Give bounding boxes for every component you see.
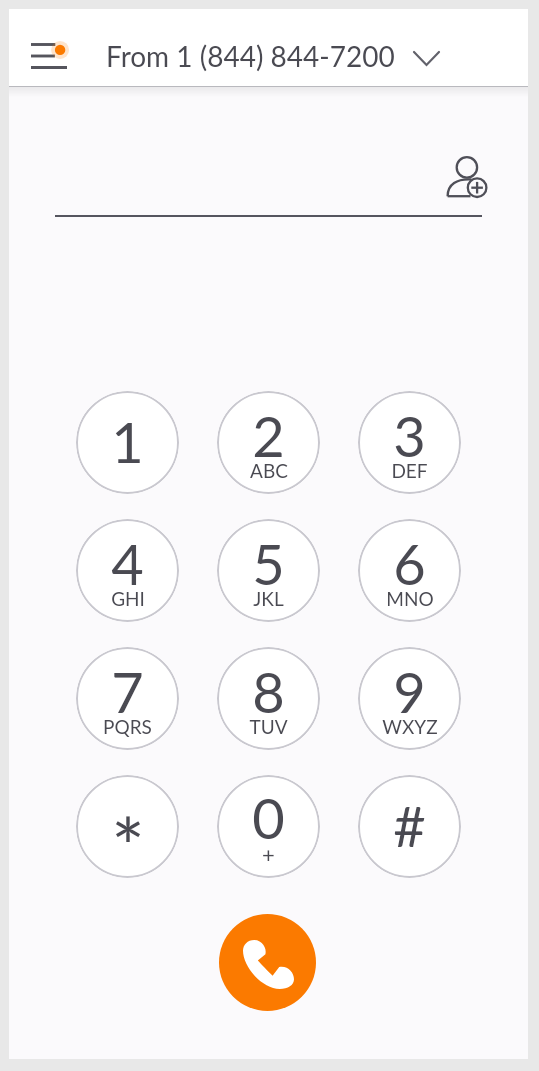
staticText: GHI (111, 587, 145, 610)
button[interactable]: Change outgoing number (404, 38, 449, 78)
staticText: TUV (249, 715, 288, 738)
staticText: 6 (393, 530, 426, 597)
staticText: From 1 (844) 844-7200 (106, 39, 395, 73)
staticText: DEF (391, 459, 428, 482)
staticText: 0 (252, 784, 285, 851)
staticText: 2 (252, 402, 285, 469)
staticText: 5 (252, 530, 285, 597)
button[interactable]: Menu (13, 9, 93, 86)
staticText: # (393, 792, 426, 859)
staticText: 9 (393, 658, 426, 725)
button[interactable]: 6 (358, 519, 461, 622)
staticText: + (262, 841, 275, 867)
staticText: ABC (250, 459, 288, 482)
staticText: * (111, 797, 145, 878)
button[interactable]: 2 (217, 391, 320, 494)
button[interactable]: # (358, 775, 461, 878)
button[interactable]: * (76, 775, 179, 878)
button[interactable]: 7 (76, 647, 179, 750)
staticText: PQRS (103, 715, 152, 738)
staticText: 8 (252, 658, 285, 725)
button[interactable]: 8 (217, 647, 320, 750)
button[interactable]: 0 (217, 775, 320, 878)
staticText: MNO (386, 587, 434, 610)
button[interactable]: 9 (358, 647, 461, 750)
staticText: 7 (111, 658, 144, 725)
staticText: 4 (111, 530, 144, 597)
button[interactable]: 4 (76, 519, 179, 622)
staticText: 1 (111, 408, 144, 475)
button[interactable]: 5 (217, 519, 320, 622)
button[interactable]: 3 (358, 391, 461, 494)
button[interactable]: 1 (76, 391, 179, 494)
button[interactable]: Add contact (441, 151, 493, 203)
staticText: JKL (253, 587, 284, 610)
staticText: WXYZ (382, 715, 438, 738)
staticText: 3 (393, 402, 426, 469)
button[interactable]: Call (219, 914, 316, 1011)
